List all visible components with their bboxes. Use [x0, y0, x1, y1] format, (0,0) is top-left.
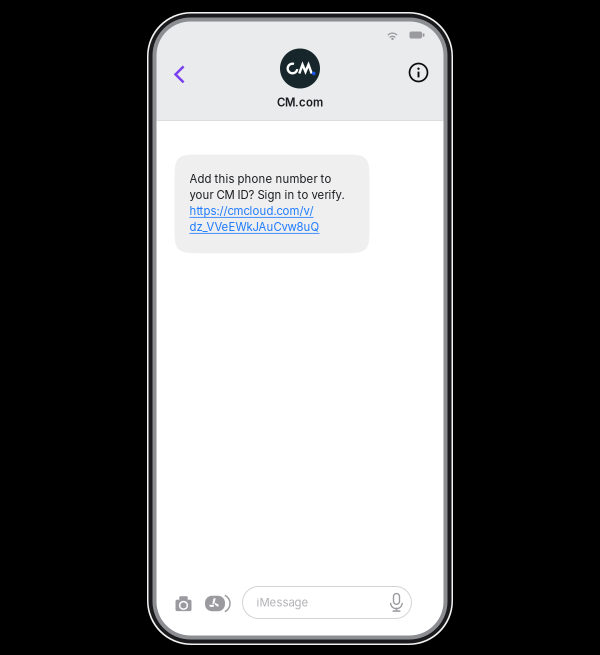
button[interactable]: iMessage: [242, 586, 411, 618]
staticText: https://cmcloud.com/v/: [189, 204, 313, 218]
button[interactable]: Camera: [170, 586, 196, 618]
button[interactable]: Details: [401, 54, 435, 90]
staticText: your CM ID? Sign in to verify.: [189, 188, 344, 202]
staticText: CM.com: [277, 95, 323, 109]
button[interactable]: Back: [160, 54, 194, 90]
staticText: Add this phone number to: [189, 172, 331, 186]
button[interactable]: Apps: [201, 586, 233, 618]
staticText: dz_VVeEWkJAuCvw8uQ: [189, 220, 319, 234]
staticText: iMessage: [256, 596, 308, 609]
